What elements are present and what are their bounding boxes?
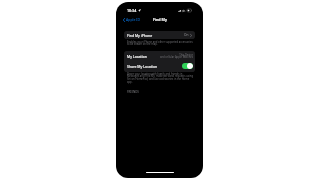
staticText: 10:34: [127, 8, 137, 13]
staticText: Share My Location: [127, 64, 158, 69]
staticText: Share your location with family and frie…: [127, 72, 194, 84]
button[interactable]: Apple ID: [123, 17, 141, 22]
staticText: Enables your iPhone and other supported …: [127, 40, 194, 46]
staticText: This Device and cellular Apple Watches: [159, 53, 193, 59]
staticText: FRIENDS: [127, 90, 139, 94]
staticText: On: [184, 33, 189, 37]
button[interactable]: Share My Location toggle: [182, 63, 193, 69]
staticText: Find My: [153, 17, 167, 22]
button[interactable]: My Location: [127, 51, 193, 61]
button[interactable]: Find My iPhone: [127, 31, 192, 39]
staticText: Apple ID: [126, 17, 141, 22]
button[interactable]: Share My Location: [127, 61, 193, 71]
staticText: My Location: [127, 54, 147, 59]
staticText: Find My iPhone: [127, 33, 153, 38]
